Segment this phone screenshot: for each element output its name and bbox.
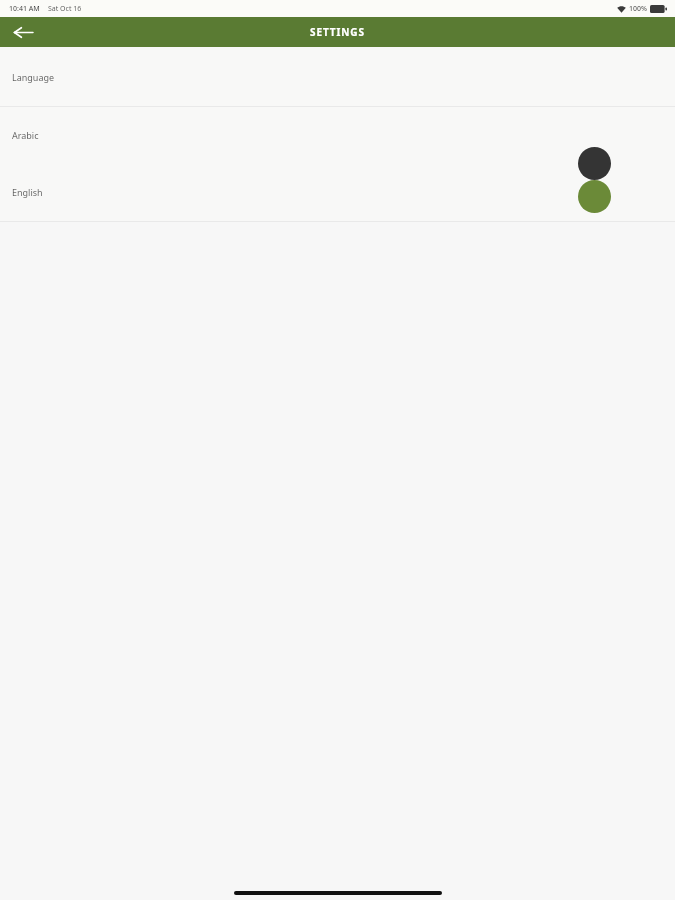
button[interactable]: Arabic colour option bbox=[578, 147, 611, 180]
staticText: 10:41 AM bbox=[9, 4, 40, 14]
staticText: 100% bbox=[629, 4, 647, 14]
button[interactable]: English bbox=[0, 163, 675, 221]
button[interactable]: Arabic bbox=[0, 107, 675, 163]
staticText: SETTINGS bbox=[310, 25, 365, 39]
staticText: Sat Oct 16 bbox=[48, 4, 82, 14]
button[interactable]: Back bbox=[0, 17, 46, 47]
staticText: English bbox=[12, 186, 43, 198]
staticText: Arabic bbox=[12, 129, 39, 141]
button[interactable]: Language bbox=[0, 47, 675, 106]
staticText: Language bbox=[12, 71, 55, 83]
button[interactable]: English colour option bbox=[578, 180, 611, 213]
